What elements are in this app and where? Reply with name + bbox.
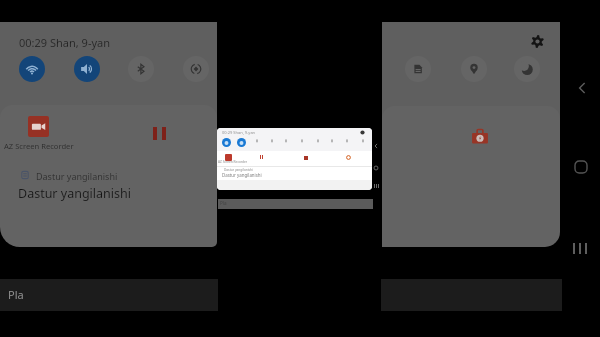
button[interactable]: Quick setting toggle bbox=[183, 56, 209, 82]
staticText: AZ Screen Recorder bbox=[218, 160, 248, 164]
button[interactable]: Quick setting toggle bbox=[128, 56, 154, 82]
button[interactable]: Back bbox=[572, 78, 592, 98]
staticText: AZ Screen Recorder bbox=[4, 141, 74, 151]
button[interactable]: Recent app preview bbox=[217, 128, 372, 190]
button[interactable]: Quick setting toggle bbox=[405, 56, 431, 82]
staticText: Pla bbox=[220, 200, 227, 206]
staticText: Pla bbox=[8, 287, 24, 302]
button[interactable]: Play store row bbox=[0, 279, 218, 311]
staticText: Dastur yangilanishi bbox=[222, 172, 262, 178]
button[interactable]: Quick setting toggle bbox=[461, 56, 487, 82]
button[interactable]: Quick setting toggle bbox=[74, 56, 100, 82]
staticText: Dastur yangilanishi bbox=[18, 185, 131, 202]
staticText: Dastur yangilanishi bbox=[36, 170, 118, 182]
button[interactable]: Quick setting toggle bbox=[514, 56, 540, 82]
button[interactable]: Settings bbox=[528, 32, 546, 50]
button[interactable]: Pause recording bbox=[153, 127, 166, 140]
staticText: 00:29 Shan, 9-yan bbox=[19, 35, 111, 50]
button[interactable]: Home bbox=[571, 157, 591, 177]
button[interactable]: AZ Screen Recorder bbox=[28, 116, 49, 137]
button[interactable]: Quick setting toggle bbox=[19, 56, 45, 82]
staticText: 00:29 Shan, 9-yan bbox=[222, 130, 256, 135]
button[interactable]: Screen recorder bbox=[471, 128, 489, 146]
staticText: Dastur yangilanishi bbox=[224, 168, 253, 172]
button[interactable]: Recent apps bbox=[573, 241, 587, 255]
